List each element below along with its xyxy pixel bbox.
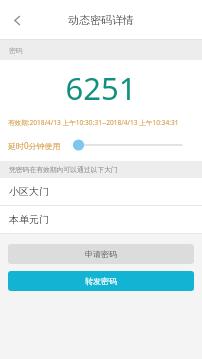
staticText: 凭密码在有效期内可以通过以下大门 bbox=[9, 165, 118, 174]
button[interactable]: 小区大门 bbox=[0, 178, 202, 205]
staticText: 转发密码 bbox=[85, 276, 117, 286]
staticText: 有效期:2018/4/13 上午10:30:31--2018/4/13 上午10… bbox=[8, 118, 179, 127]
staticText: 延时0分钟使用 bbox=[8, 140, 61, 151]
staticText: 小区大门 bbox=[9, 185, 49, 198]
button[interactable]: 申请密码 bbox=[8, 244, 194, 264]
button[interactable]: Back bbox=[0, 3, 34, 37]
button[interactable]: 本单元门 bbox=[0, 206, 202, 233]
staticText: 申请密码 bbox=[85, 249, 117, 259]
staticText: 动态密码详情 bbox=[68, 13, 134, 27]
button[interactable]: 转发密码 bbox=[8, 271, 194, 291]
staticText: 密码 bbox=[9, 46, 23, 55]
staticText: 本单元门 bbox=[9, 213, 49, 226]
other: Delay slider bbox=[73, 134, 182, 156]
staticText: 6251 bbox=[0, 67, 202, 109]
button[interactable]: 延时0分钟使用 bbox=[0, 134, 202, 156]
